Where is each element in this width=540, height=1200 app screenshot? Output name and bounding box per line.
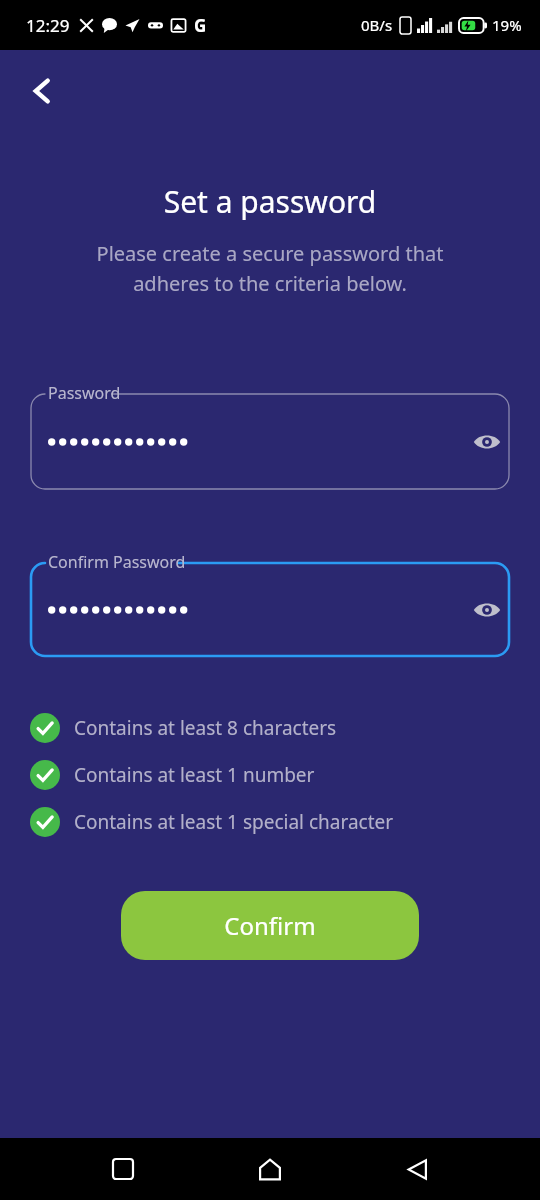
button[interactable]: Back [14,63,70,119]
button[interactable]: Contains at least 1 special character [30,806,510,837]
staticText: G [194,14,207,37]
button[interactable]: Home [246,1145,294,1193]
staticText: Please create a secure password that adh… [26,240,514,297]
button[interactable]: Back [393,1145,441,1193]
staticText: 19% [492,15,522,35]
staticText: Password [48,382,121,404]
staticText: 0B/s [361,15,393,35]
staticText: Contains at least 1 number [74,762,315,788]
button[interactable]: Recent apps [99,1145,147,1193]
button[interactable]: Confirm [121,891,419,960]
button[interactable]: Password [31,382,509,490]
staticText: Contains at least 8 characters [74,715,337,741]
staticText: Confirm [224,909,316,942]
button[interactable]: Show password [465,588,509,632]
staticText: Confirm Password [48,551,186,573]
staticText: Set a password [0,181,540,222]
button[interactable]: Contains at least 8 characters [30,712,510,743]
staticText: 12:29 [26,14,70,37]
staticText: Contains at least 1 special character [74,809,394,835]
button[interactable]: Show password [465,420,509,464]
button[interactable]: Confirm Password [31,551,509,657]
button[interactable]: Contains at least 1 number [30,759,510,790]
